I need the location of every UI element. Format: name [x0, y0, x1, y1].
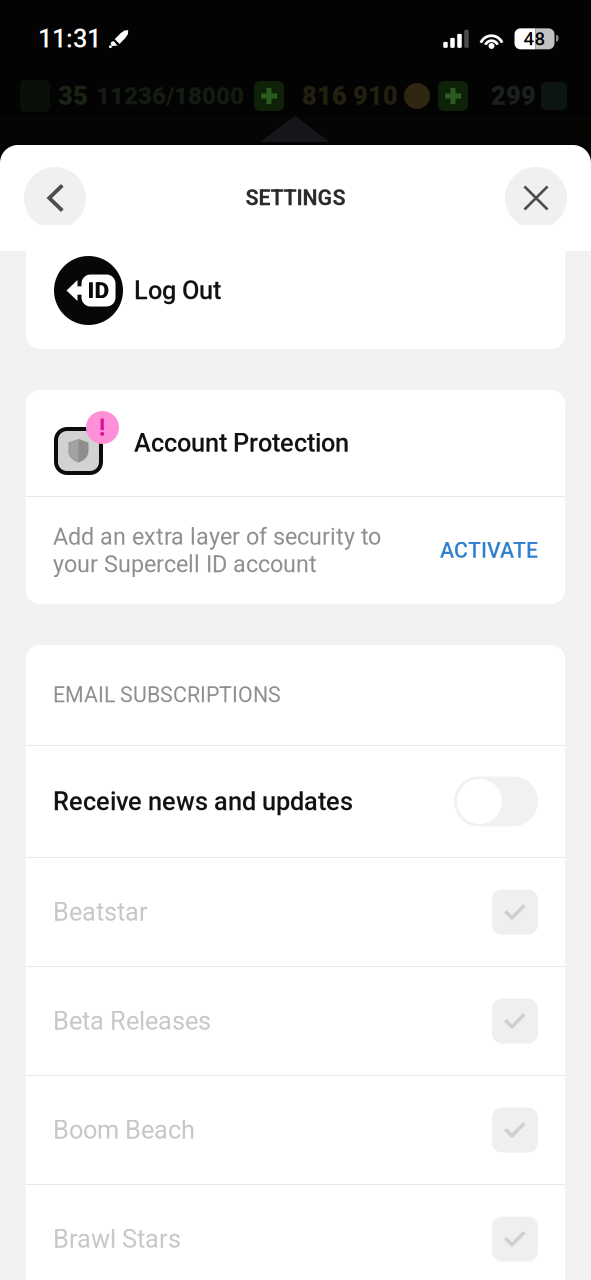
staticText: 48 [523, 28, 545, 50]
button[interactable]: Boom Beach [26, 1076, 565, 1184]
button[interactable]: Back [24, 167, 86, 229]
staticText: Beta Releases [53, 1006, 211, 1036]
staticText: ACTIVATE [440, 538, 538, 563]
button[interactable]: Brawl Stars [26, 1185, 565, 1280]
staticText: 11:31 [38, 24, 101, 54]
staticText: EMAIL SUBSCRIPTIONS [53, 682, 281, 707]
staticText: 35 [58, 81, 88, 111]
button[interactable]: Beatstar [26, 858, 565, 966]
staticText: SETTINGS [245, 185, 345, 210]
button[interactable]: ID [26, 225, 565, 349]
staticText: Add an extra layer of security to your S… [53, 523, 381, 578]
staticText: 11236/18000 [96, 82, 244, 110]
staticText: 816 910 [302, 81, 398, 111]
staticText: Log Out [134, 276, 221, 305]
staticText: Receive news and updates [53, 787, 353, 816]
button[interactable]: Receive news and updates [26, 746, 565, 857]
staticText: Account Protection [134, 428, 349, 458]
staticText: Beatstar [53, 897, 148, 927]
button[interactable]: Close [505, 167, 567, 229]
staticText: ID [87, 277, 109, 304]
button[interactable]: Beta Releases [26, 967, 565, 1075]
button[interactable]: ACTIVATE [440, 538, 538, 563]
staticText: Boom Beach [53, 1115, 195, 1145]
staticText: 299 [491, 81, 536, 111]
staticText: Brawl Stars [53, 1224, 181, 1254]
